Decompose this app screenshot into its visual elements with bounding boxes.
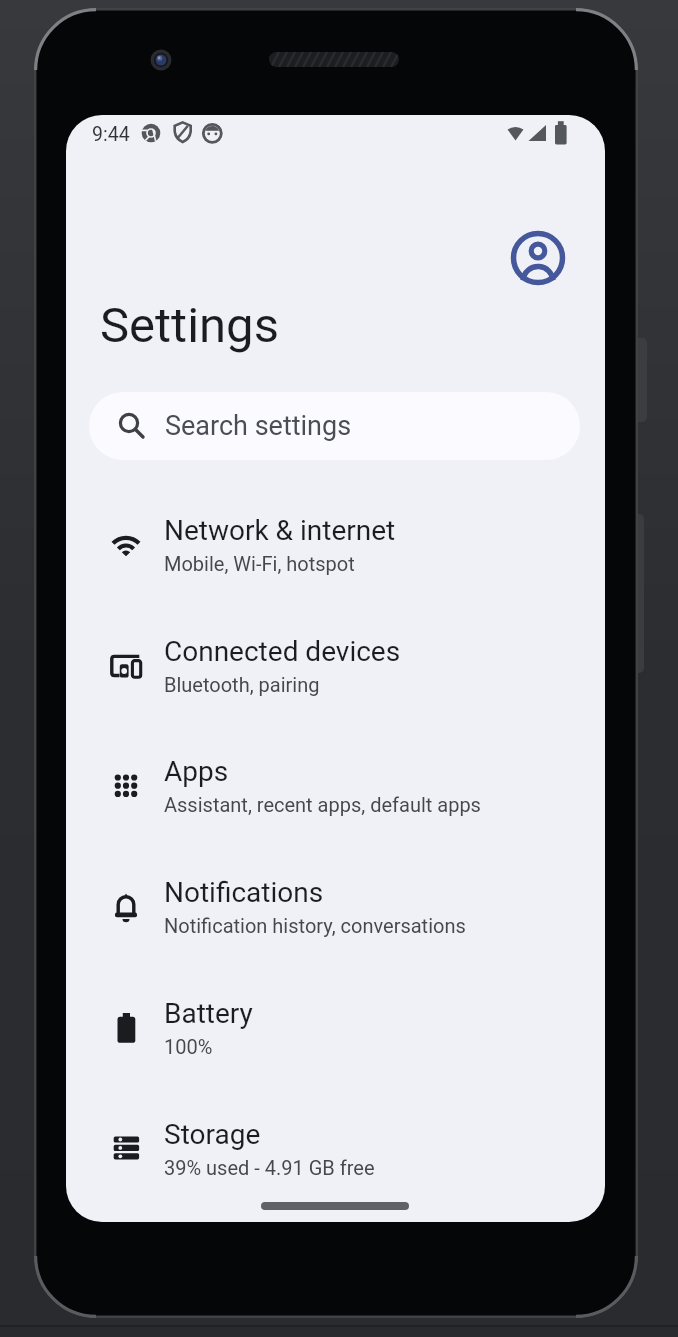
staticText: Notification history, conversations — [164, 914, 466, 937]
button[interactable]: Storage — [66, 1088, 605, 1209]
button[interactable] — [508, 228, 568, 288]
staticText: Battery — [164, 997, 253, 1030]
staticText: Apps — [164, 755, 229, 788]
button[interactable]: Notifications — [66, 846, 605, 967]
button[interactable]: Connected devices — [66, 605, 605, 726]
staticText: Settings — [100, 297, 279, 354]
staticText: Network & internet — [164, 514, 396, 547]
staticText: Assistant, recent apps, default apps — [164, 793, 481, 816]
staticText: 39% used - 4.91 GB free — [164, 1156, 375, 1179]
staticText: Notifications — [164, 876, 324, 909]
button[interactable]: Apps — [66, 725, 605, 846]
staticText: 9:44 — [92, 123, 130, 146]
staticText: Mobile, Wi-Fi, hotspot — [164, 552, 355, 575]
staticText: Bluetooth, pairing — [164, 673, 320, 696]
staticText: Search settings — [165, 410, 352, 442]
staticText: 100% — [164, 1035, 213, 1058]
button[interactable]: Network & internet — [66, 484, 605, 605]
button[interactable]: Search settings — [89, 392, 580, 460]
staticText: Connected devices — [164, 635, 401, 668]
button[interactable]: Battery — [66, 967, 605, 1088]
staticText: Storage — [164, 1118, 261, 1151]
